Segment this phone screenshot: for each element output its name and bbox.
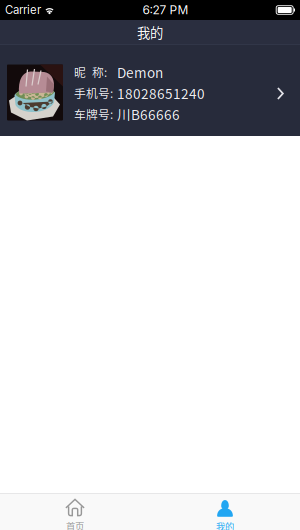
- staticText: 18028651240: [117, 83, 205, 103]
- staticText: 手机号:: [74, 84, 113, 101]
- staticText: Demon: [117, 62, 163, 82]
- button[interactable]: 昵 称:: [0, 45, 300, 136]
- staticText: Carrier: [5, 3, 41, 17]
- staticText: 首页: [66, 519, 84, 530]
- staticText: 我的: [137, 23, 163, 42]
- staticText: 川B66666: [117, 104, 180, 124]
- staticText: 车牌号:: [74, 105, 113, 122]
- button[interactable]: 我的: [150, 493, 300, 530]
- staticText: 6:27 PM: [143, 3, 189, 17]
- button[interactable]: 首页: [0, 493, 150, 530]
- staticText: 我的: [216, 519, 234, 530]
- staticText: 昵 称:: [74, 63, 107, 80]
